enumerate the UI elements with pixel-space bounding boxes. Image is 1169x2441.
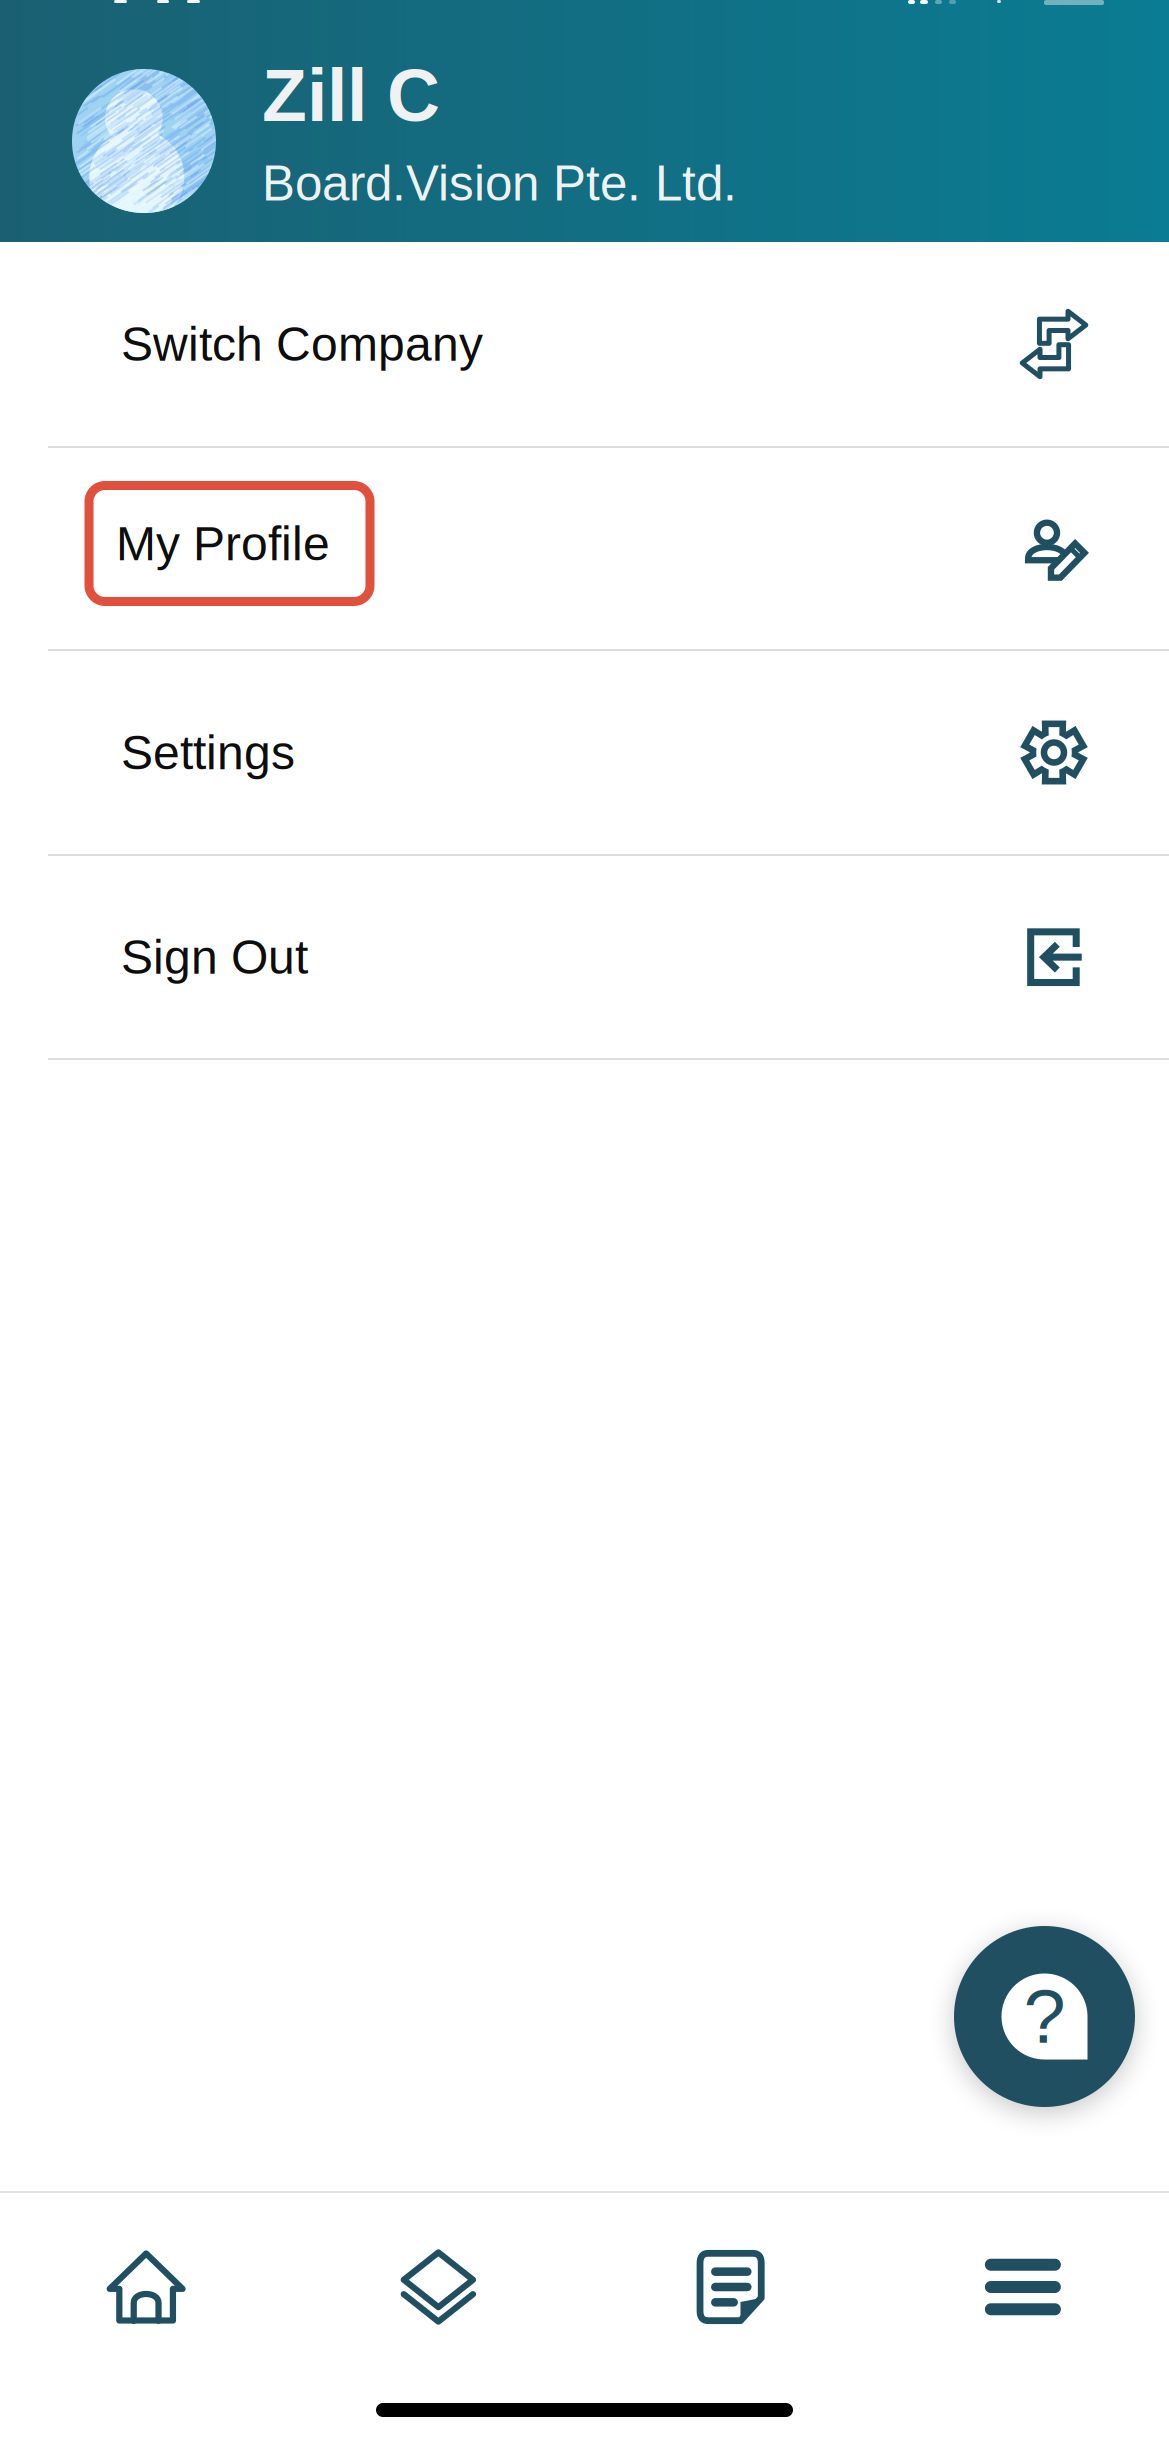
- button[interactable]: Menu: [877, 2193, 1169, 2381]
- staticText: ?: [1023, 1974, 1065, 2059]
- button[interactable]: My Profile: [0, 448, 1169, 649]
- staticText: My Profile: [116, 517, 330, 570]
- button[interactable]: Switch Company: [0, 242, 1169, 446]
- staticText: Settings: [121, 726, 295, 779]
- staticText: Sign Out: [121, 930, 308, 984]
- button[interactable]: Sign Out: [0, 856, 1169, 1058]
- button[interactable]: Projects: [292, 2193, 584, 2381]
- button[interactable]: Home: [0, 2193, 292, 2381]
- staticText: Switch Company: [121, 317, 483, 371]
- button[interactable]: Help: [954, 1926, 1135, 2107]
- staticText: Zill C: [262, 54, 440, 136]
- button[interactable]: Settings: [0, 651, 1169, 854]
- button[interactable]: Documents: [584, 2193, 877, 2381]
- staticText: Board.Vision Pte. Ltd.: [262, 156, 737, 211]
